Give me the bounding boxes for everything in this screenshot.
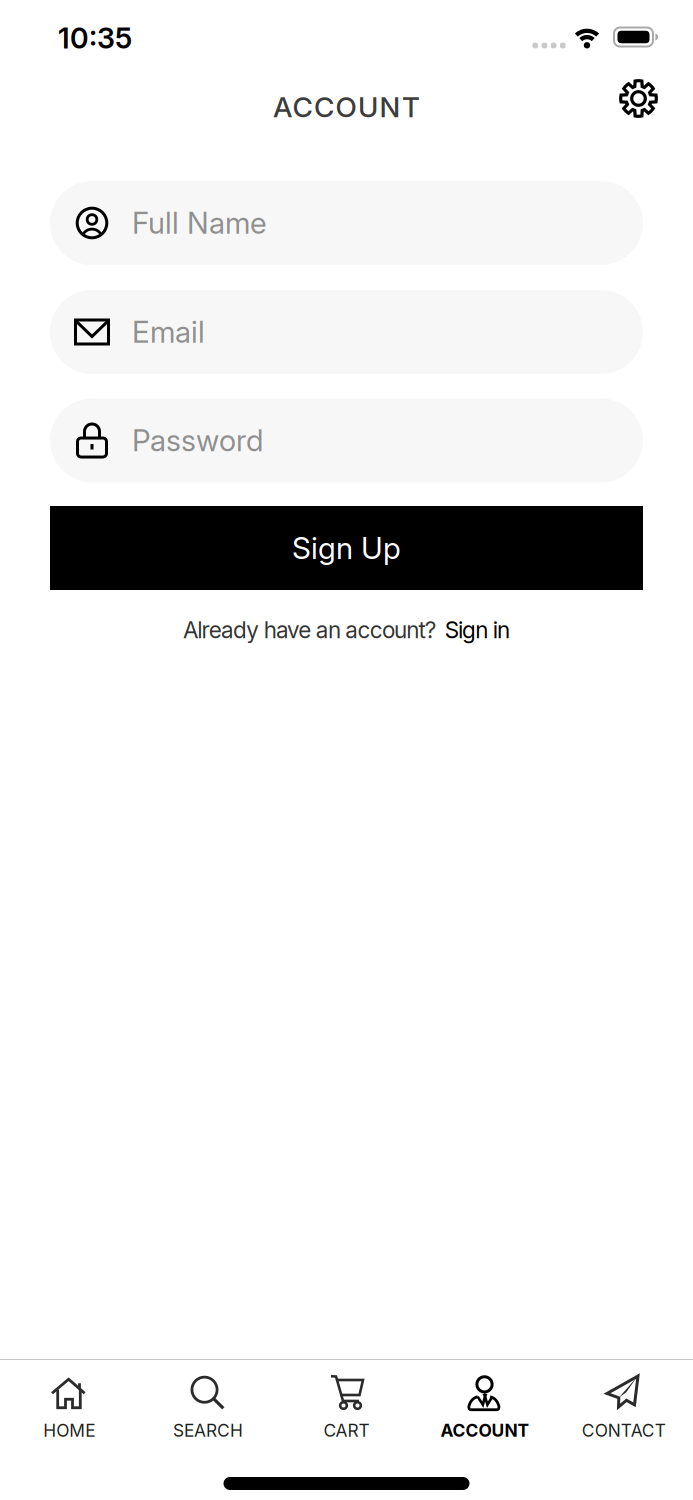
staticText: Email (132, 314, 205, 350)
button[interactable]: Sign in (445, 616, 510, 644)
staticText: ACCOUNT (273, 90, 420, 124)
staticText: 10:35 (58, 21, 132, 55)
staticText: Full Name (132, 205, 267, 241)
button[interactable]: CONTACT (554, 1362, 693, 1448)
staticText: CONTACT (582, 1420, 666, 1441)
staticText: Already have an account? (183, 616, 437, 644)
button[interactable]: Settings (615, 75, 661, 121)
staticText: ACCOUNT (441, 1420, 530, 1441)
button[interactable]: Full Name (50, 181, 643, 265)
staticText: SEARCH (173, 1420, 243, 1441)
button[interactable]: Email (50, 290, 643, 374)
staticText: Sign in (445, 616, 510, 644)
button[interactable]: Sign Up (50, 506, 643, 590)
button[interactable]: CART (277, 1362, 416, 1448)
staticText: CART (323, 1420, 369, 1441)
button[interactable]: HOME (0, 1362, 139, 1448)
staticText: HOME (43, 1420, 95, 1441)
button[interactable]: SEARCH (139, 1362, 277, 1448)
button[interactable]: ACCOUNT (416, 1362, 554, 1448)
staticText: Password (132, 423, 263, 458)
staticText: Sign Up (292, 530, 401, 566)
button[interactable]: Password (50, 398, 643, 482)
